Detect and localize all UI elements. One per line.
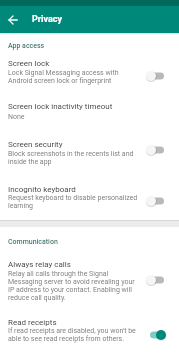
- button[interactable]: Incognito keyboard: [0, 181, 179, 213]
- staticText: Communication: [8, 238, 58, 246]
- staticText: If read receipts are disabled, you won't…: [8, 327, 136, 343]
- staticText: Screen lock inactivity timeout: [8, 102, 113, 111]
- button[interactable]: Screen lock inactivity timeout: [0, 98, 179, 126]
- button[interactable]: Always relay calls: [0, 255, 179, 306]
- staticText: Request keyboard to disable personalized…: [8, 194, 138, 210]
- staticText: Lock Signal Messaging access with Androi…: [8, 69, 119, 85]
- staticText: None: [8, 113, 25, 121]
- staticText: Privacy: [32, 14, 63, 25]
- button[interactable]: [6, 13, 20, 27]
- staticText: Always relay calls: [8, 260, 71, 269]
- staticText: Block screenshots in the recents list an…: [8, 150, 134, 166]
- staticText: Incognito keyboard: [8, 185, 76, 194]
- staticText: Read receipts: [8, 318, 57, 327]
- staticText: Screen lock: [8, 59, 50, 68]
- button[interactable]: Read receipts: [0, 313, 179, 347]
- button[interactable]: Screen lock: [0, 55, 179, 90]
- staticText: App access: [8, 42, 45, 50]
- staticText: Relay all calls through the Signal Messa…: [8, 270, 135, 302]
- button[interactable]: Screen security: [0, 135, 179, 168]
- staticText: Screen security: [8, 140, 63, 149]
